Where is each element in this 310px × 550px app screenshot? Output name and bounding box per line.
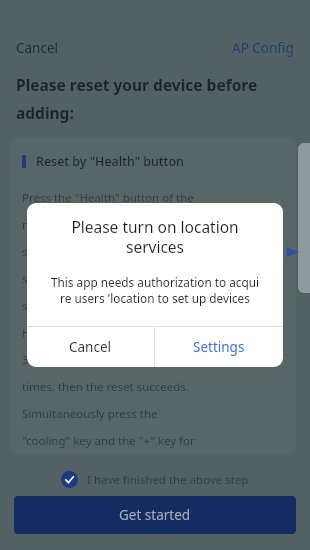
staticText: times, then the reset succeeds. [22,379,189,395]
staticText: Cancel [69,338,112,356]
staticText: Hold down the "Health" button for [22,325,208,341]
staticText: adding: [16,102,74,123]
staticText: machine , hear the air conditioner [22,217,206,233]
staticText: "cooling" key and the "+" key for [22,433,195,449]
staticText: Please reset your device before [16,74,258,95]
other: Next step [286,245,300,259]
staticText: 3s, hear the air conditioner ring 8 [22,352,203,368]
staticText: successful. If the reset is not [22,271,175,287]
staticText: This app needs authorization to acqui re… [37,274,273,306]
button[interactable]: Get started [14,496,296,534]
button[interactable]: Cancel [27,327,154,367]
staticText: Settings [193,338,245,356]
button[interactable]: AP Config [230,34,296,62]
staticText: Cancel [16,39,59,57]
staticText: AP Config [232,39,294,57]
staticText: sound 8 times, then the reset is [22,244,192,260]
staticText: Simultaneously press the [22,406,158,422]
staticText: successful, please try the following [22,298,210,314]
button[interactable]: I have finished the above step [0,463,310,496]
staticText: Please turn on location services [41,216,269,258]
staticText: Get started [119,506,191,524]
staticText: Reset by "Health" button [36,153,184,170]
button[interactable]: Cancel [14,34,61,62]
button[interactable]: Reset by "Health" button [10,137,296,455]
button[interactable]: Settings [155,327,283,367]
staticText: I have finished the above step [87,472,249,488]
staticText: Press the "Health" button of the [22,190,194,206]
